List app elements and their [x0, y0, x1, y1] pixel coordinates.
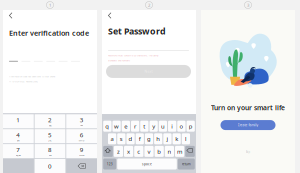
- staticText: n: [167, 147, 171, 155]
- button[interactable]: return: [178, 158, 195, 169]
- staticText: k: [175, 135, 178, 143]
- button[interactable]: 9: [66, 144, 97, 158]
- button[interactable]: z: [114, 146, 123, 157]
- staticText: A verification code has been sent to you…: [9, 75, 55, 78]
- button[interactable]: b: [155, 146, 164, 157]
- button[interactable]: Delete: [66, 159, 97, 173]
- staticText: 9: [80, 146, 84, 154]
- button[interactable]: 5: [35, 129, 65, 143]
- staticText: GHI: [17, 139, 20, 142]
- button[interactable]: s: [117, 133, 125, 144]
- staticText: MNO: [79, 139, 85, 142]
- staticText: ABC: [48, 124, 51, 127]
- staticText: e: [124, 122, 127, 130]
- button[interactable]: l: [182, 133, 190, 144]
- staticText: WXYZ: [79, 154, 84, 157]
- button[interactable]: 4: [3, 129, 34, 143]
- staticText: v: [147, 147, 150, 155]
- button[interactable]: r: [131, 121, 139, 132]
- staticText: f: [139, 135, 141, 143]
- staticText: 3: [247, 2, 249, 8]
- staticText: y: [152, 122, 155, 130]
- staticText: h: [156, 135, 160, 143]
- button[interactable]: k: [173, 133, 181, 144]
- button[interactable]: q: [103, 121, 111, 132]
- staticText: 6: [80, 131, 84, 139]
- staticText: Skip: [245, 150, 250, 154]
- button[interactable]: 7: [3, 144, 34, 158]
- button[interactable]: 0: [35, 159, 65, 173]
- staticText: Set Password: [108, 25, 166, 37]
- button[interactable]: t: [140, 121, 148, 132]
- button[interactable]: 1: [3, 114, 34, 128]
- staticText: c: [137, 147, 140, 155]
- button[interactable]: o: [177, 121, 186, 132]
- staticText: 7: [16, 146, 20, 154]
- button[interactable]: n: [165, 146, 174, 157]
- staticText: p: [189, 122, 193, 130]
- staticText: o: [179, 122, 183, 130]
- staticText: j: [166, 135, 168, 143]
- staticText: 8: [48, 146, 52, 154]
- staticText: +1 13-5124-8120. Resend (59s): [9, 80, 38, 83]
- staticText: 0: [48, 162, 52, 170]
- staticText: a: [111, 135, 114, 143]
- button[interactable]: j: [163, 133, 171, 144]
- staticText: t: [143, 122, 145, 130]
- button[interactable]: d: [126, 133, 135, 144]
- staticText: 2: [148, 2, 150, 8]
- button[interactable]: 123: [103, 158, 116, 169]
- button[interactable]: 2: [35, 114, 65, 128]
- button[interactable]: Shift: [103, 146, 113, 157]
- button[interactable]: Skip: [245, 150, 250, 154]
- button[interactable]: g: [145, 133, 153, 144]
- button[interactable]: v: [144, 146, 154, 157]
- staticText: return: [182, 162, 191, 166]
- button[interactable]: h: [154, 133, 162, 144]
- button[interactable]: Create family: [220, 120, 275, 130]
- button[interactable]: u: [159, 121, 167, 132]
- staticText: z: [117, 147, 120, 155]
- staticText: 3: [80, 116, 84, 124]
- button[interactable]: e: [122, 121, 130, 132]
- button[interactable]: Delete: [185, 146, 195, 157]
- staticText: g: [147, 135, 151, 143]
- staticText: TUV: [48, 154, 51, 157]
- staticText: d: [129, 135, 133, 143]
- button[interactable]: w: [112, 121, 121, 132]
- staticText: l: [185, 135, 187, 143]
- staticText: u: [161, 122, 165, 130]
- staticText: Password must contain 6-20 characters, i…: [108, 54, 158, 57]
- staticText: Create family: [237, 123, 258, 127]
- button[interactable]: Back: [6, 10, 15, 20]
- staticText: s: [120, 135, 123, 143]
- staticText: w: [114, 122, 119, 130]
- button[interactable]: c: [134, 146, 143, 157]
- button[interactable]: space: [117, 158, 177, 169]
- button[interactable]: 3: [66, 114, 97, 128]
- button[interactable]: Back: [105, 10, 114, 20]
- button[interactable]: f: [136, 133, 144, 144]
- button[interactable]: i: [168, 121, 176, 132]
- staticText: Enter verification code: [9, 28, 89, 38]
- button[interactable]: Next: [106, 65, 191, 78]
- staticText: x: [127, 147, 130, 155]
- staticText: DEF: [80, 124, 83, 127]
- staticText: i: [171, 122, 173, 130]
- staticText: space: [142, 162, 152, 166]
- button[interactable]: p: [186, 121, 195, 132]
- button[interactable]: m: [175, 146, 184, 157]
- button[interactable]: 6: [66, 129, 97, 143]
- staticText: PQRS: [16, 154, 21, 157]
- button[interactable]: 8: [35, 144, 65, 158]
- button[interactable]: x: [124, 146, 133, 157]
- button[interactable]: y: [149, 121, 158, 132]
- staticText: b: [157, 147, 161, 155]
- staticText: 2: [48, 116, 52, 124]
- staticText: 123: [107, 162, 113, 166]
- staticText: q: [105, 122, 109, 130]
- staticText: 1: [16, 116, 20, 124]
- staticText: r: [134, 122, 136, 130]
- button[interactable]: a: [108, 133, 116, 144]
